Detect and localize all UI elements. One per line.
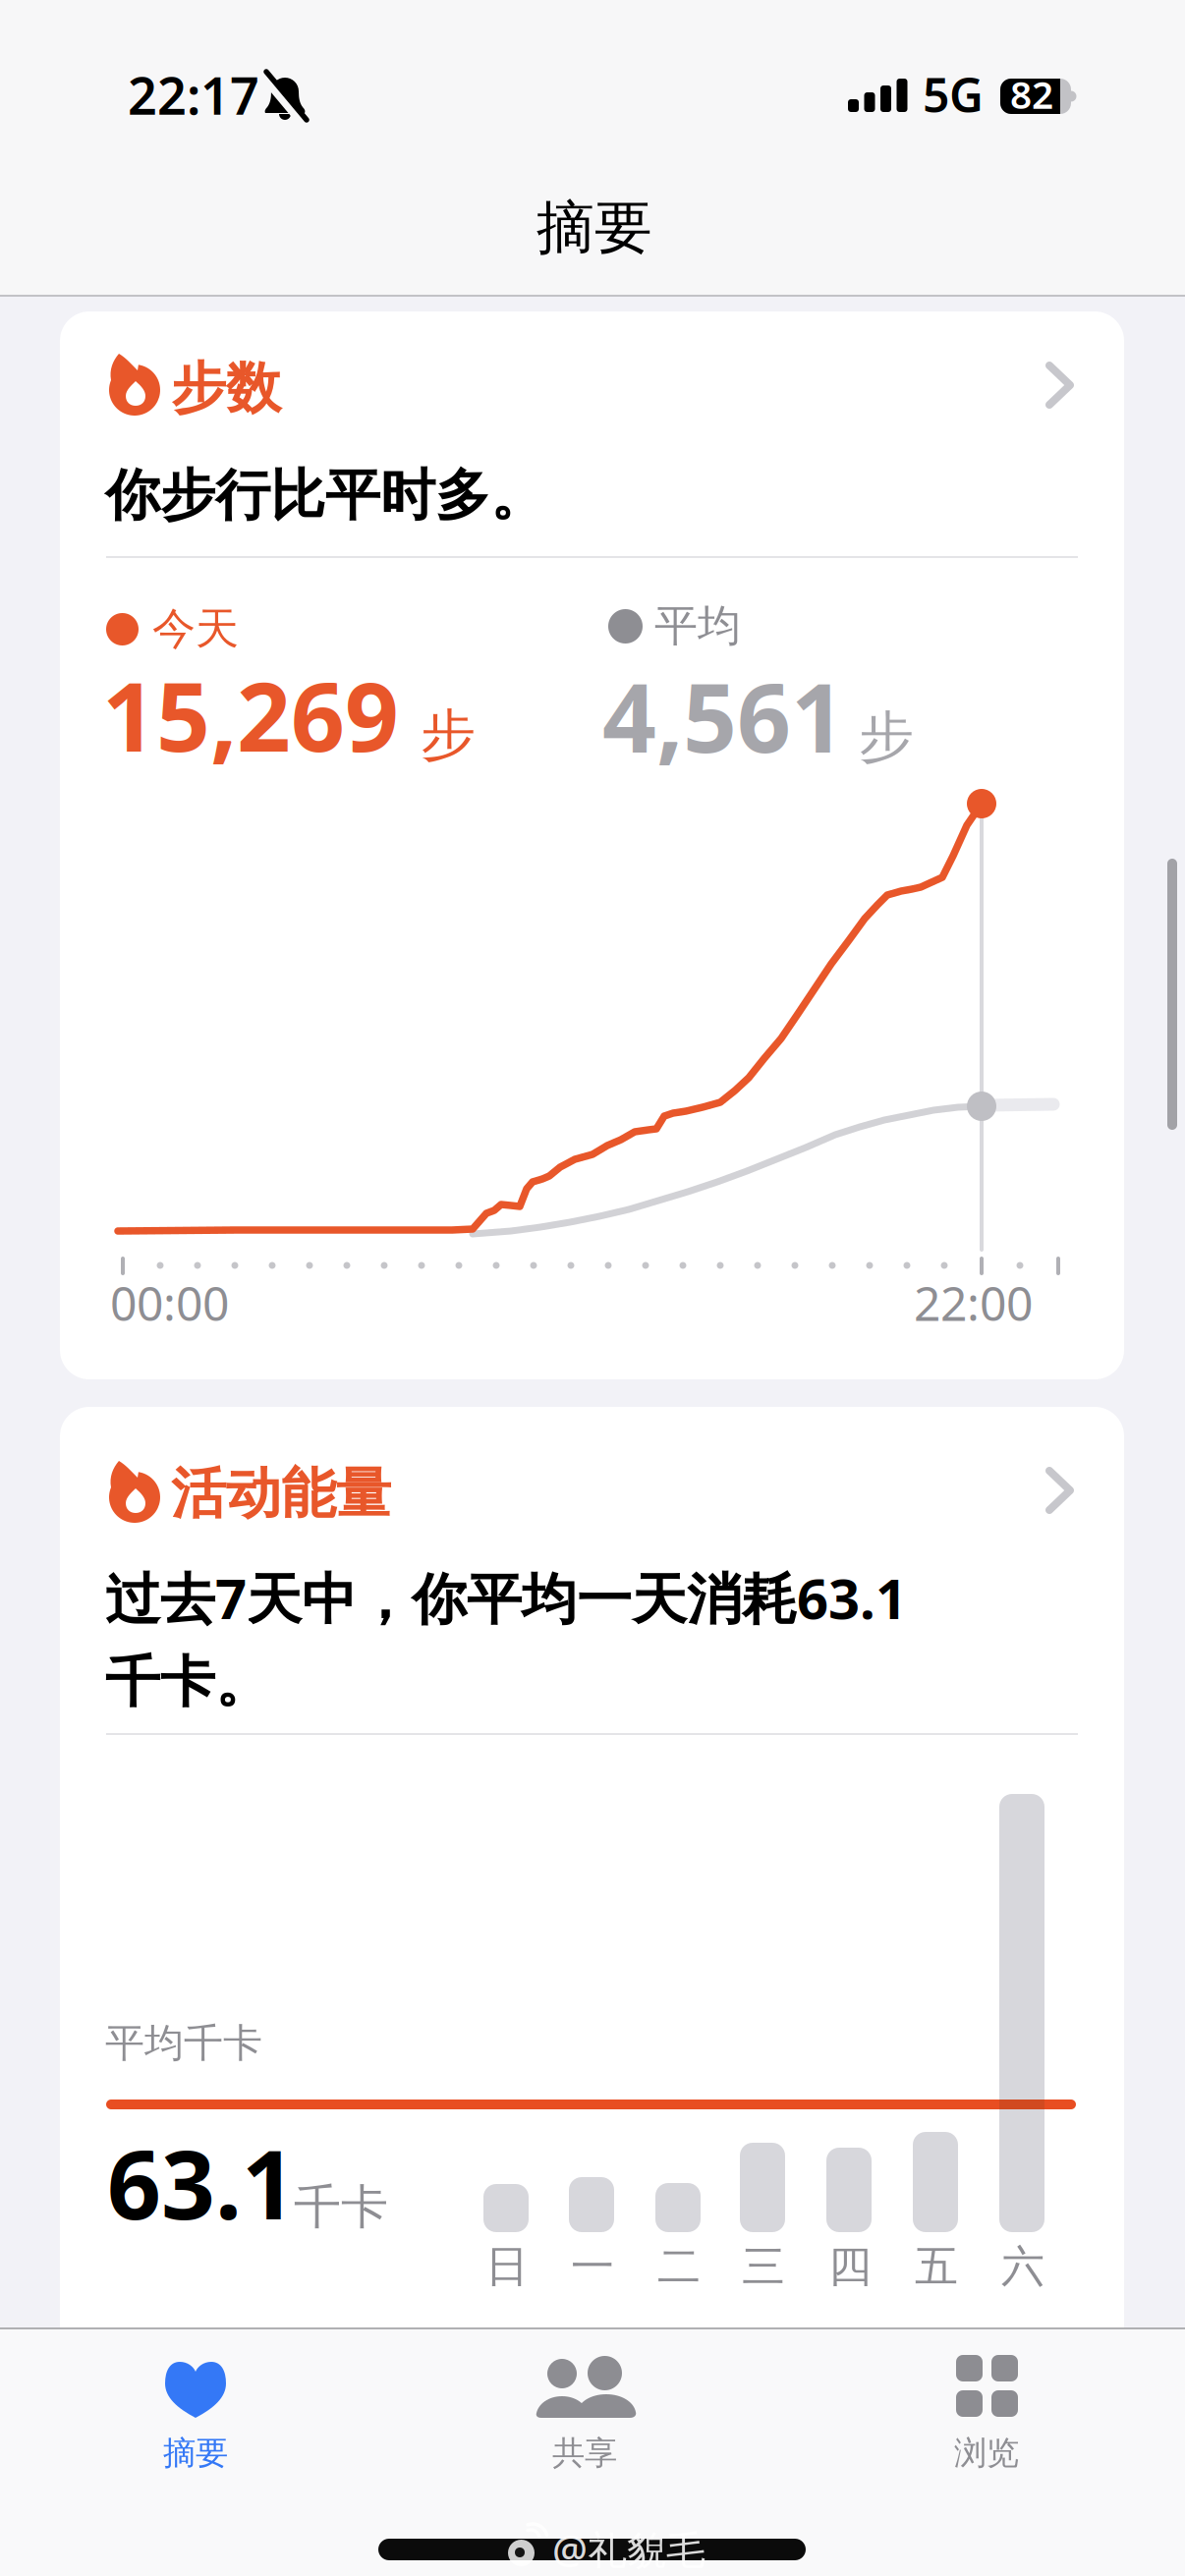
staticText: 六 [1001,2240,1044,2293]
staticText: 三 [742,2240,785,2293]
staticText: 22:17 [128,61,259,129]
staticText: 摘要 [163,2433,228,2473]
staticText: 15,269 [102,652,399,778]
staticText: 共享 [552,2433,617,2473]
staticText: 步 [859,703,914,771]
staticText: 22:00 [914,1271,1033,1334]
button[interactable] [60,1407,1124,2375]
button[interactable]: 共享 [427,2331,1185,2576]
staticText: 过去7天中，你平均一天消耗63.1 [105,1561,907,1634]
staticText: 00:00 [110,1271,229,1334]
staticText: 平均千卡 [105,2019,262,2067]
button[interactable]: 浏览 [829,2331,1185,2576]
staticText: 平均 [654,599,741,652]
staticText: 千卡 [294,2178,388,2236]
staticText: 活动能量 [171,1460,391,1528]
button[interactable]: 摘要 [38,2331,1185,2576]
staticText: 摘要 [536,193,652,263]
staticText: 63.1 [107,2120,296,2245]
button[interactable] [60,311,1124,1379]
staticText: 日 [485,2240,529,2293]
staticText: 五 [915,2240,958,2293]
staticText: 82 [1010,69,1053,119]
staticText: 千卡。 [105,1649,270,1716]
staticText: 二 [657,2240,701,2293]
staticText: 四 [828,2240,872,2293]
staticText: 浏览 [954,2433,1019,2473]
staticText: 4,561 [602,653,845,779]
staticText: @礼貌毛 [552,2523,705,2575]
staticText: 步数 [171,355,281,422]
staticText: 今天 [152,602,239,655]
staticText: 步 [421,701,476,769]
staticText: 一 [571,2240,614,2293]
staticText: 5G [923,63,984,125]
staticText: 你步行比平时多。 [105,462,545,529]
